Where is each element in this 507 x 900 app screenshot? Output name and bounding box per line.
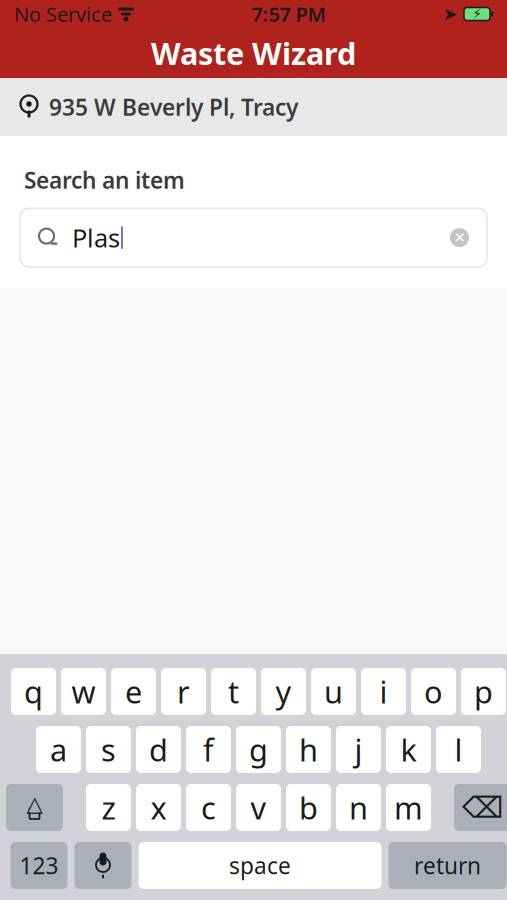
- staticText: v: [250, 787, 266, 828]
- staticText: e: [125, 671, 142, 712]
- staticText: u: [324, 671, 343, 712]
- staticText: f: [203, 729, 214, 770]
- staticText: m: [394, 787, 423, 828]
- staticText: y: [275, 671, 291, 712]
- button[interactable]: c: [186, 784, 231, 831]
- button[interactable]: y: [261, 668, 306, 715]
- staticText: b: [299, 787, 318, 828]
- staticText: g: [249, 729, 268, 770]
- staticText: No Service: [14, 1, 112, 27]
- staticText: o: [424, 671, 443, 712]
- button[interactable]: n: [336, 784, 381, 831]
- staticText: ⚡︎: [472, 6, 481, 21]
- button[interactable]: l: [436, 726, 481, 773]
- button[interactable]: Plas: [20, 208, 487, 267]
- button[interactable]: p: [461, 668, 506, 715]
- staticText: ⌫: [462, 791, 503, 824]
- staticText: q: [24, 671, 43, 712]
- button[interactable]: i: [361, 668, 406, 715]
- button[interactable]: b: [286, 784, 331, 831]
- staticText: Waste Wizard: [151, 33, 356, 73]
- button[interactable]: space: [138, 842, 381, 889]
- staticText: w: [71, 671, 95, 712]
- button[interactable]: m: [386, 784, 431, 831]
- button[interactable]: v: [236, 784, 281, 831]
- staticText: △: [26, 791, 42, 816]
- staticText: n: [349, 787, 368, 828]
- staticText: 935 W Beverly Pl, Tracy: [49, 92, 298, 122]
- button[interactable]: j: [336, 726, 381, 773]
- staticText: t: [228, 671, 239, 712]
- staticText: ▲: [27, 793, 41, 814]
- button[interactable]: Dictate: [74, 842, 131, 889]
- button[interactable]: e: [111, 668, 156, 715]
- staticText: 7:57 PM: [251, 1, 326, 27]
- staticText: s: [101, 729, 116, 770]
- staticText: h: [299, 729, 318, 770]
- staticText: x: [150, 787, 166, 828]
- button[interactable]: Delete: [454, 784, 507, 831]
- staticText: 123: [19, 850, 58, 880]
- button[interactable]: w: [61, 668, 106, 715]
- button[interactable]: h: [286, 726, 331, 773]
- staticText: z: [101, 787, 115, 828]
- staticText: a: [50, 729, 67, 770]
- button[interactable]: s: [86, 726, 131, 773]
- staticText: k: [400, 729, 416, 770]
- button[interactable]: x: [136, 784, 181, 831]
- button[interactable]: Shift: [6, 784, 63, 831]
- staticText: d: [149, 729, 168, 770]
- button[interactable]: k: [386, 726, 431, 773]
- staticText: l: [454, 729, 462, 770]
- staticText: j: [354, 729, 362, 770]
- button[interactable]: u: [311, 668, 356, 715]
- staticText: c: [201, 787, 216, 828]
- button[interactable]: return: [388, 842, 506, 889]
- button[interactable]: q: [11, 668, 56, 715]
- button[interactable]: t: [211, 668, 256, 715]
- button[interactable]: o: [411, 668, 456, 715]
- staticText: Plas: [72, 221, 120, 254]
- button[interactable]: z: [86, 784, 131, 831]
- button[interactable]: 935 W Beverly Pl, Tracy: [0, 78, 507, 136]
- button[interactable]: g: [236, 726, 281, 773]
- staticText: p: [474, 671, 493, 712]
- button[interactable]: 123: [10, 842, 67, 889]
- staticText: space: [229, 850, 291, 880]
- staticText: ➤: [443, 4, 458, 24]
- staticText: r: [177, 671, 190, 712]
- button[interactable]: a: [36, 726, 81, 773]
- button[interactable]: r: [161, 668, 206, 715]
- staticText: ✕: [453, 229, 465, 246]
- staticText: i: [379, 671, 387, 712]
- button[interactable]: d: [136, 726, 181, 773]
- staticText: return: [414, 850, 481, 880]
- button[interactable]: f: [186, 726, 231, 773]
- staticText: Search an item: [24, 165, 185, 195]
